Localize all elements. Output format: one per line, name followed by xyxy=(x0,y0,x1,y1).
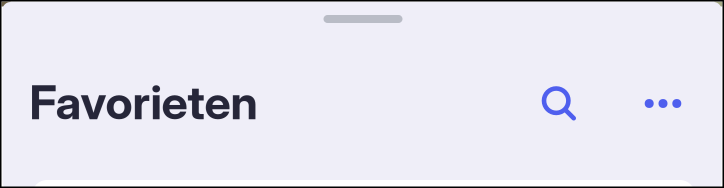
button[interactable]: Zoeken xyxy=(541,86,576,121)
staticText: Favorieten xyxy=(29,74,257,130)
button[interactable]: Meer xyxy=(644,86,681,121)
